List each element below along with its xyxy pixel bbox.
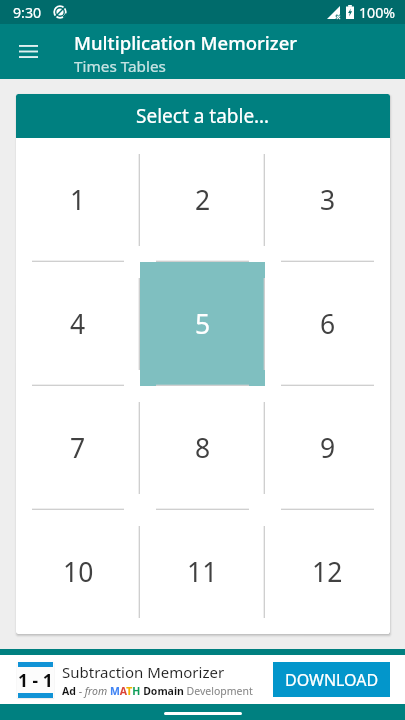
staticText: 6 <box>320 306 336 342</box>
staticText: 100% <box>359 3 396 22</box>
staticText: DOWNLOAD <box>285 669 379 691</box>
staticText: 4 <box>70 306 86 342</box>
staticText: 11 <box>187 554 218 590</box>
staticText: Multiplication Memorizer <box>74 30 298 55</box>
button[interactable]: 3 <box>265 138 390 262</box>
button[interactable]: DOWNLOAD <box>273 662 390 697</box>
button[interactable]: 12 <box>265 510 390 634</box>
staticText: Subtraction Memorizer <box>62 662 225 682</box>
button[interactable]: Select a table… <box>16 94 390 138</box>
staticText: 10 <box>63 554 94 590</box>
button[interactable]: Open navigation menu <box>0 24 56 79</box>
button[interactable]: 1 - 1 <box>0 655 405 704</box>
button[interactable]: 1 <box>16 138 140 262</box>
staticText: 1 - 1 <box>18 668 53 692</box>
button[interactable]: 2 <box>140 138 265 262</box>
button[interactable]: 9 <box>265 386 390 510</box>
staticText: Ad - from MATH Domain Development <box>62 684 253 698</box>
button[interactable]: 7 <box>16 386 140 510</box>
staticText: Select a table… <box>136 103 270 129</box>
button[interactable]: 5 <box>140 262 265 386</box>
staticText: 1 <box>70 182 86 218</box>
staticText: 9:30 <box>13 3 42 22</box>
button[interactable]: 4 <box>16 262 140 386</box>
button[interactable]: 10 <box>16 510 140 634</box>
staticText: 12 <box>312 554 343 590</box>
staticText: 9 <box>320 430 336 466</box>
staticText: 3 <box>320 182 336 218</box>
button[interactable]: 8 <box>140 386 265 510</box>
staticText: 5 <box>195 306 211 342</box>
button[interactable]: 6 <box>265 262 390 386</box>
staticText: 8 <box>195 430 211 466</box>
button[interactable]: 11 <box>140 510 265 634</box>
staticText: 2 <box>195 182 211 218</box>
staticText: Times Tables <box>74 56 166 77</box>
staticText: 7 <box>70 430 86 466</box>
